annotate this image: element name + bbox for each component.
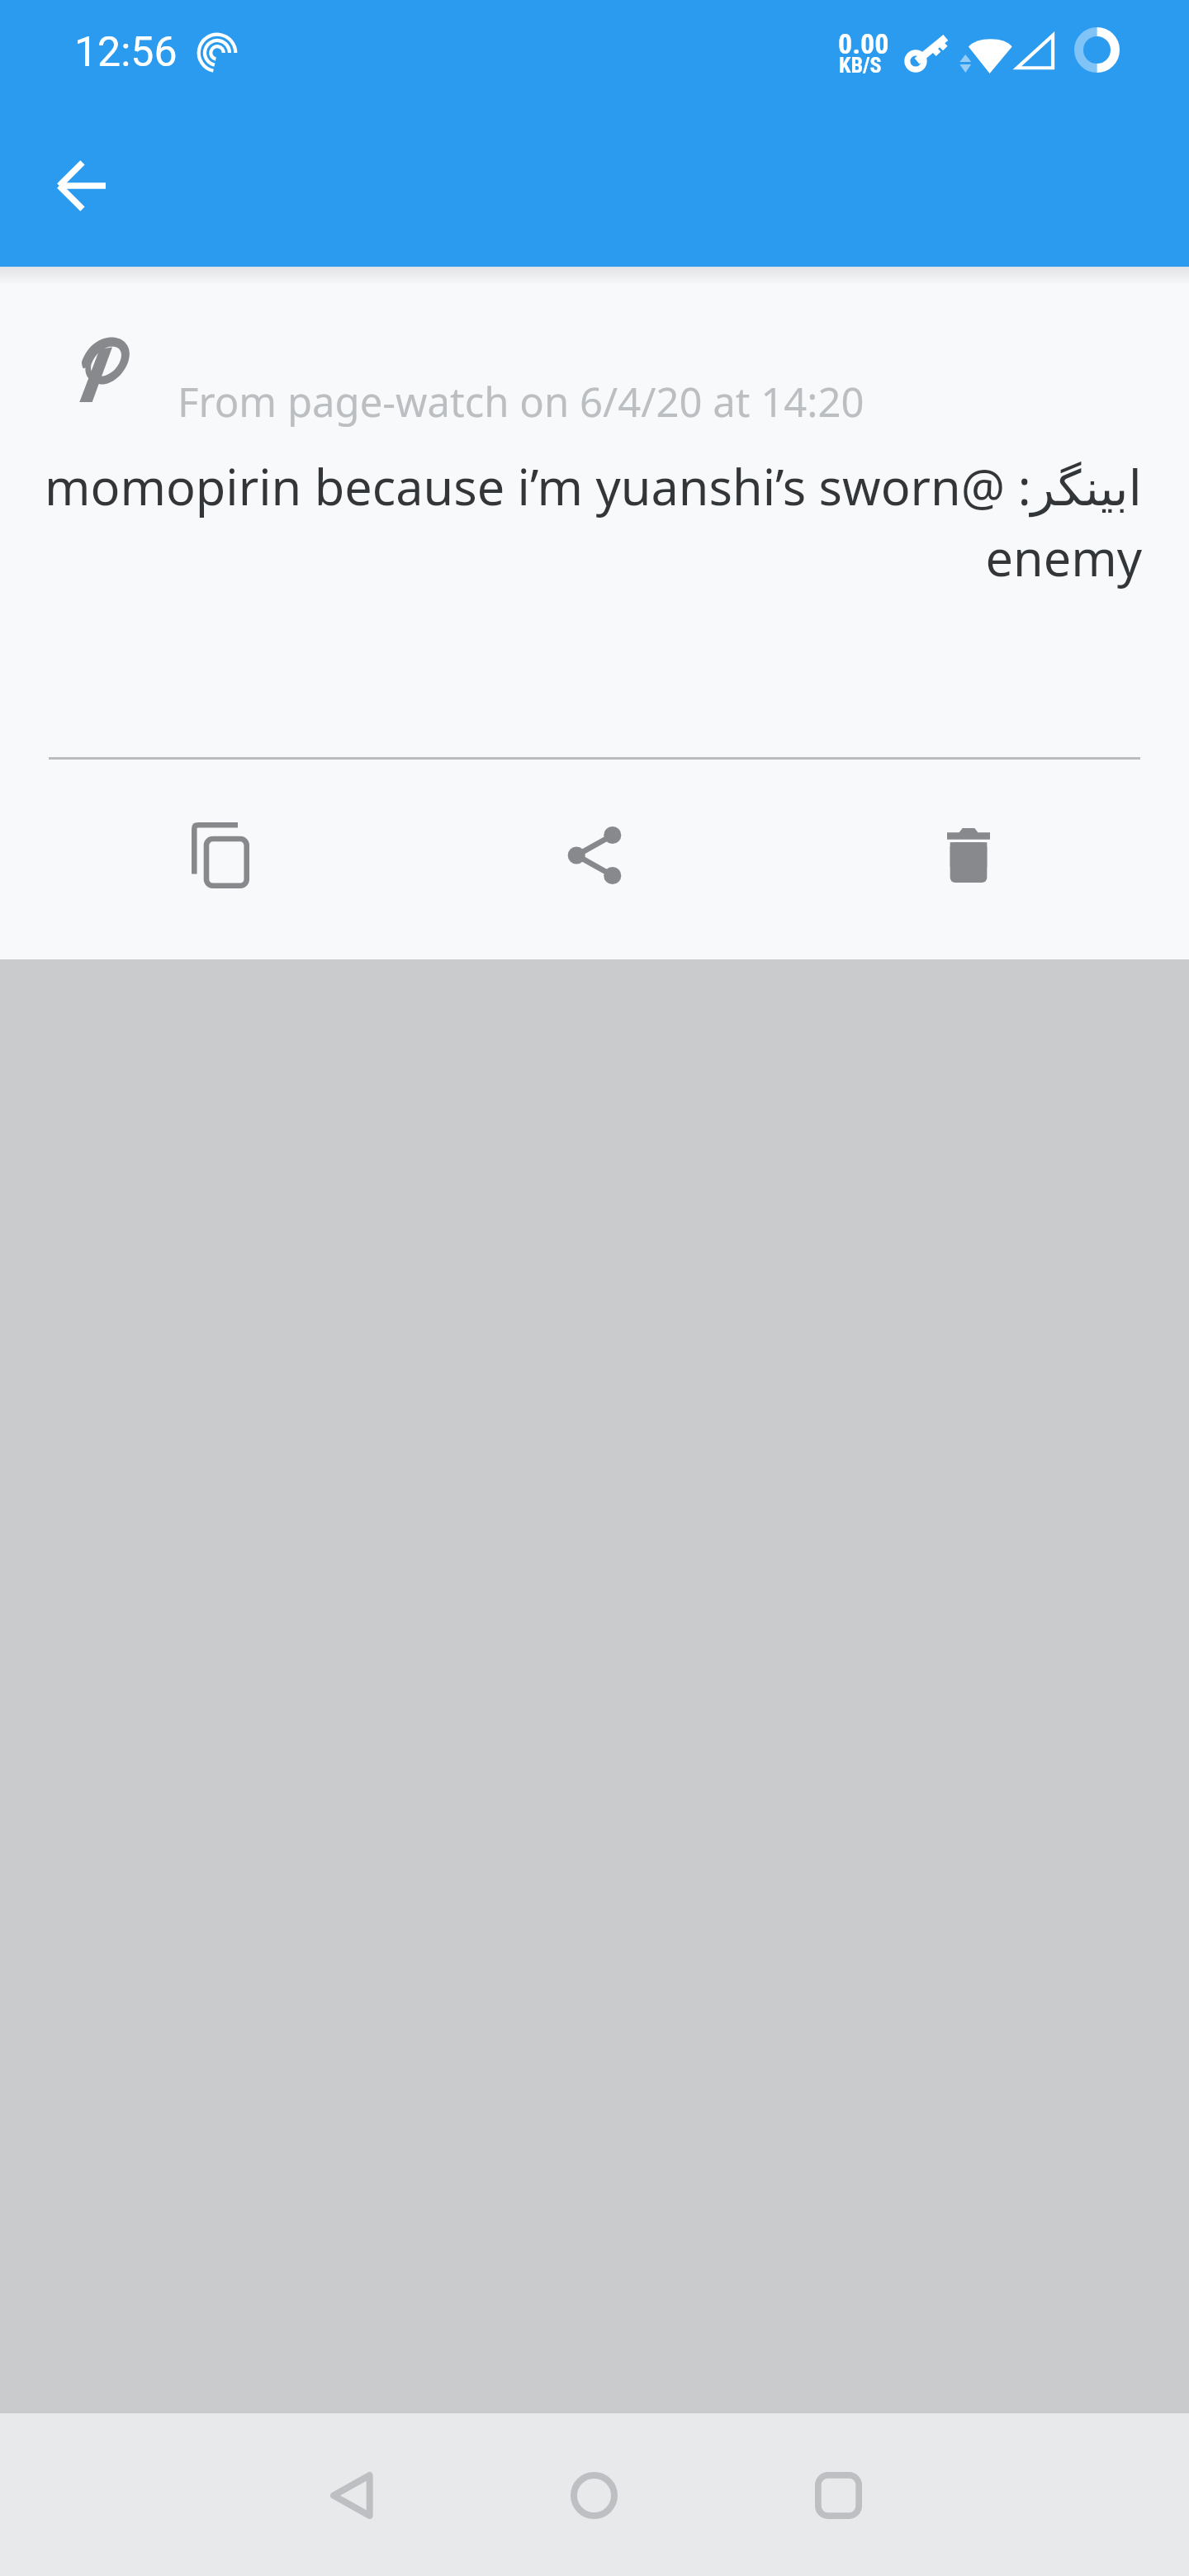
button[interactable]: Delete (855, 765, 1081, 946)
button[interactable]: Home (473, 2415, 715, 2575)
staticText: From page-watch on 6/4/20 at 14:20 (178, 374, 865, 429)
button[interactable]: Recents (718, 2415, 959, 2575)
button[interactable]: Share (481, 765, 707, 946)
button[interactable]: Back (230, 2415, 472, 2575)
staticText: KB/S (839, 53, 882, 78)
button[interactable]: Copy (107, 765, 333, 946)
staticText: 0.00 (838, 27, 889, 60)
staticText: ابینگر: momopirin because i’m yuanshi’s … (33, 453, 1142, 590)
staticText: 12:56 (74, 28, 178, 77)
button[interactable]: Back (28, 133, 134, 239)
